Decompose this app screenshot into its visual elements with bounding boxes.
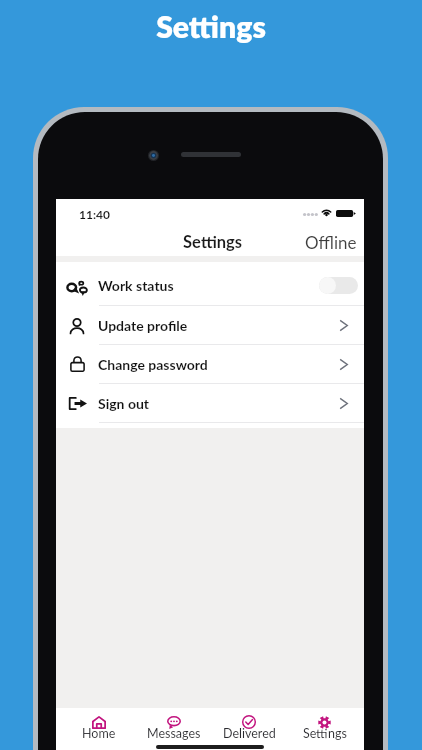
button[interactable]: Offline — [298, 228, 364, 254]
staticText: Update profile — [98, 317, 188, 334]
staticText: Settings — [0, 8, 422, 44]
staticText: Settings — [183, 232, 242, 252]
staticText: 11:40 — [79, 207, 110, 221]
staticText: Settings — [303, 726, 347, 740]
staticText: Change password — [98, 356, 208, 373]
button[interactable]: Settings — [287, 715, 363, 743]
staticText: Sign out — [98, 395, 150, 412]
button[interactable]: Sign out — [56, 384, 364, 422]
button[interactable]: Work status — [56, 266, 364, 305]
button[interactable]: Messages — [136, 715, 211, 743]
button[interactable]: Delivered — [211, 715, 287, 743]
staticText: Messages — [147, 726, 201, 740]
staticText: Offline — [305, 232, 357, 252]
button[interactable]: Home — [61, 715, 136, 743]
staticText: Home — [82, 726, 116, 740]
button[interactable]: Update profile — [56, 306, 364, 344]
staticText: Delivered — [223, 726, 276, 740]
staticText: Work status — [98, 277, 174, 294]
button[interactable]: Change password — [56, 345, 364, 383]
